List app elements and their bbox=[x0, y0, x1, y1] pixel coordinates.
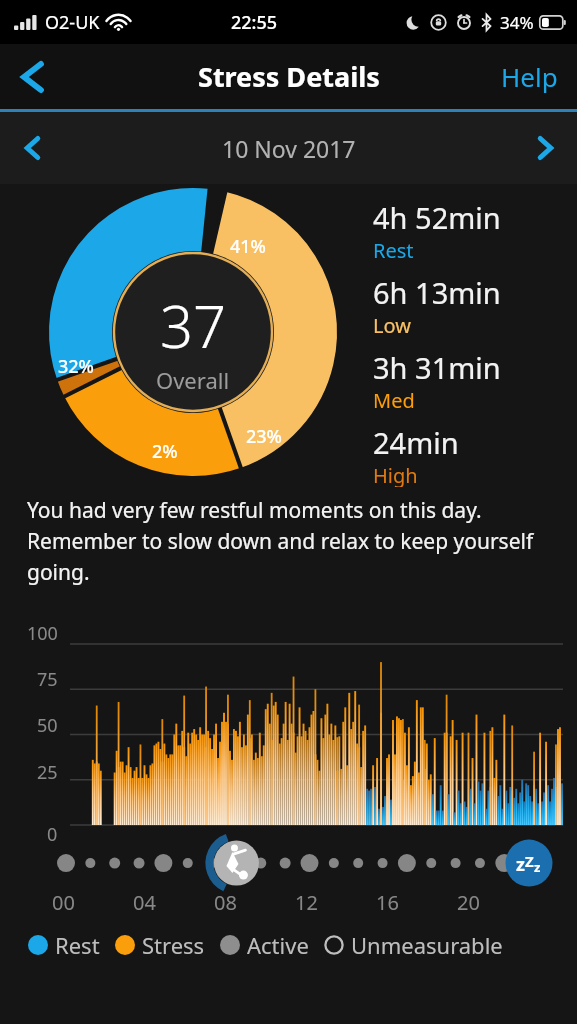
staticText: O2-UK bbox=[45, 10, 100, 35]
staticText: Med bbox=[373, 387, 415, 414]
staticText: Stress Details bbox=[198, 58, 380, 95]
button[interactable]: Active bbox=[220, 930, 309, 960]
staticText: 34% bbox=[500, 11, 534, 34]
button[interactable]: Back bbox=[0, 44, 64, 109]
staticText: Low bbox=[373, 312, 411, 339]
staticText: High bbox=[373, 462, 418, 487]
button[interactable]: Unmeasurable bbox=[324, 930, 503, 960]
staticText: 20 bbox=[457, 889, 480, 916]
button[interactable]: Help bbox=[482, 44, 577, 109]
staticText: 37 bbox=[160, 286, 227, 365]
button[interactable]: Rest bbox=[28, 930, 100, 960]
staticText: 16 bbox=[376, 889, 399, 916]
staticText: z bbox=[516, 852, 525, 877]
staticText: 6h 13min bbox=[373, 273, 501, 312]
staticText: 00 bbox=[52, 889, 75, 916]
staticText: z bbox=[534, 858, 541, 876]
button[interactable]: Next day bbox=[513, 116, 577, 180]
staticText: Stress bbox=[142, 930, 205, 960]
button[interactable]: Stress bbox=[115, 930, 205, 960]
staticText: 2% bbox=[152, 439, 178, 464]
staticText: 0 bbox=[47, 822, 58, 847]
staticText: 4h 52min bbox=[373, 198, 501, 237]
staticText: 25 bbox=[37, 760, 58, 785]
staticText: Rest bbox=[55, 930, 100, 960]
staticText: 12 bbox=[295, 889, 318, 916]
staticText: 08 bbox=[214, 889, 237, 916]
button[interactable]: Previous day bbox=[0, 116, 64, 180]
staticText: 100 bbox=[27, 621, 58, 646]
staticText: 75 bbox=[37, 667, 58, 692]
staticText: Unmeasurable bbox=[351, 930, 503, 960]
staticText: Rest bbox=[373, 237, 414, 264]
staticText: You had very few restful moments on this… bbox=[27, 496, 553, 586]
staticText: Help bbox=[501, 59, 558, 94]
staticText: 24min bbox=[373, 423, 459, 462]
staticText: Active bbox=[247, 930, 309, 960]
staticText: Overall bbox=[156, 365, 230, 395]
staticText: 10 Nov 2017 bbox=[222, 133, 356, 164]
staticText: Z bbox=[525, 851, 534, 871]
staticText: 32% bbox=[58, 354, 94, 379]
staticText: 41% bbox=[230, 234, 266, 259]
staticText: 50 bbox=[37, 713, 58, 738]
staticText: 23% bbox=[246, 424, 282, 449]
staticText: 22:55 bbox=[231, 10, 278, 35]
staticText: 04 bbox=[133, 889, 156, 916]
staticText: 3h 31min bbox=[373, 348, 501, 387]
